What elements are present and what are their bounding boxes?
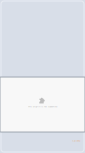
staticText: Ad info — [72, 139, 80, 142]
button[interactable]: Ad info — [72, 139, 80, 142]
staticText: This plug-in is not supported — [28, 105, 57, 108]
